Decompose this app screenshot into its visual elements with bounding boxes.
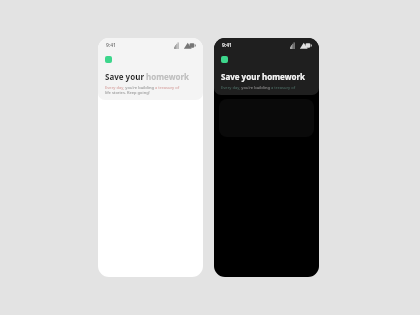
staticText: 9:41 — [106, 42, 116, 49]
other: App icon — [105, 56, 112, 63]
staticText: Save your homework — [221, 71, 306, 82]
staticText: 9:41 — [222, 42, 232, 49]
button[interactable]: App icon — [105, 56, 196, 95]
staticText: Every day, you're building a treasury of — [221, 85, 296, 90]
button[interactable]: App icon — [221, 56, 312, 90]
other: App icon — [221, 56, 228, 63]
staticText: Save your homework — [105, 71, 190, 82]
staticText: Every day, you're building a treasury of… — [105, 85, 180, 95]
